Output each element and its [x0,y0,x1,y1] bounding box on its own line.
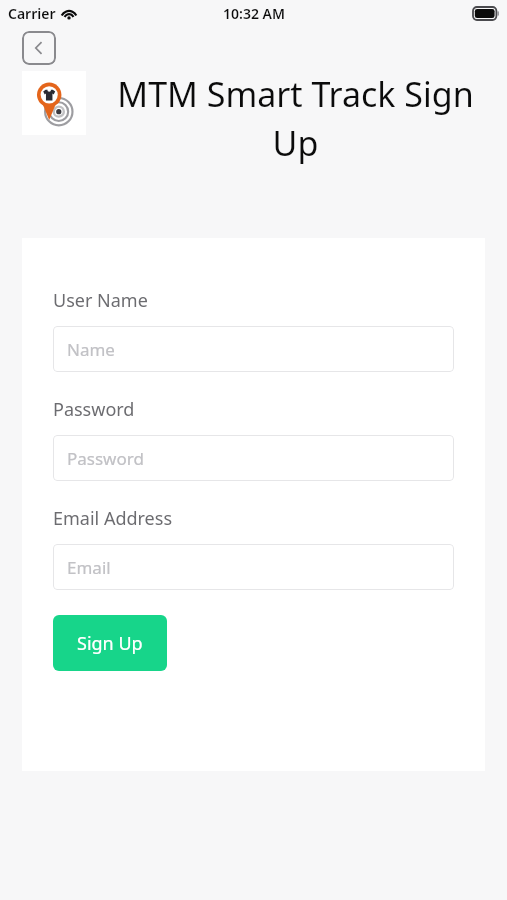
staticText: Sign Up [77,631,143,656]
staticText: Email Address [53,506,173,531]
staticText: Carrier [8,4,56,23]
staticText: Password [53,397,135,422]
staticText: 10:32 AM [223,4,285,23]
button[interactable]: Password [53,435,454,481]
button[interactable]: Sign Up [53,615,167,671]
staticText: MTM Smart Track Sign Up [92,71,499,166]
button[interactable]: Back [22,31,56,65]
button[interactable]: Name [53,326,454,372]
staticText: User Name [53,288,148,313]
staticText: Email [67,556,111,579]
staticText: Name [67,338,115,361]
button[interactable]: Email [53,544,454,590]
staticText: Password [67,447,144,470]
